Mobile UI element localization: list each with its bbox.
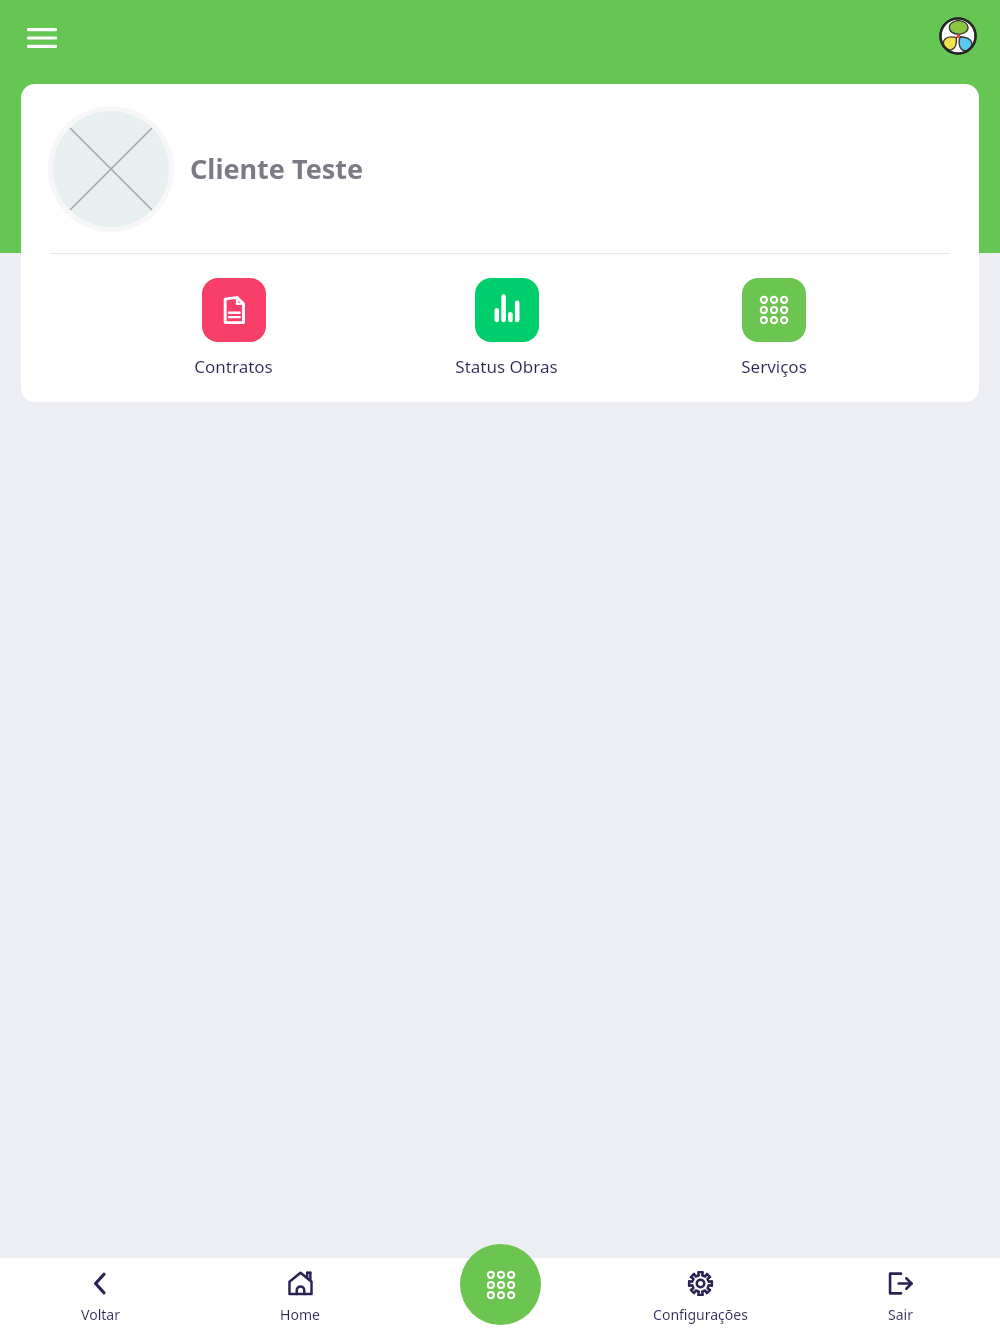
button[interactable]: Serviços [731,274,817,382]
button[interactable]: Sair [800,1258,1000,1334]
staticText: Status Obras [455,355,558,378]
staticText: Cliente Teste [190,150,364,187]
button[interactable]: Home [200,1258,400,1334]
staticText: Sair [888,1305,913,1324]
button[interactable]: Status Obras [445,274,568,382]
staticText: Home [280,1305,320,1324]
button[interactable]: Logo [932,10,984,62]
staticText: Configurações [653,1305,748,1324]
button[interactable]: Menu [18,14,66,62]
staticText: Contratos [194,355,273,378]
button[interactable]: Configurações [600,1258,800,1334]
button[interactable]: Contratos [184,274,283,382]
staticText: Serviços [741,355,807,378]
button[interactable]: Voltar [0,1258,200,1334]
button[interactable]: Serviços [460,1244,541,1325]
staticText: Voltar [81,1305,120,1324]
